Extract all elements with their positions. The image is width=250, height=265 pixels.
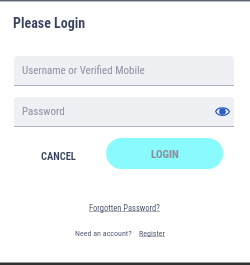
staticText: Password bbox=[22, 105, 65, 118]
button[interactable]: Username or Verified Mobile bbox=[14, 56, 234, 86]
button[interactable]: Register bbox=[139, 229, 165, 238]
staticText: Need an account? bbox=[75, 229, 132, 238]
button[interactable]: CANCEL bbox=[32, 146, 84, 166]
button[interactable]: LOGIN bbox=[106, 138, 223, 169]
staticText: LOGIN bbox=[151, 148, 179, 161]
button[interactable]: Password bbox=[14, 97, 234, 127]
button[interactable]: Forgotten Password? bbox=[89, 203, 160, 213]
staticText: Register bbox=[139, 229, 165, 238]
button[interactable]: Show password bbox=[214, 103, 230, 119]
staticText: Please Login bbox=[13, 15, 86, 31]
staticText: Forgotten Password? bbox=[89, 203, 160, 213]
staticText: Username or Verified Mobile bbox=[22, 64, 145, 77]
staticText: CANCEL bbox=[41, 150, 76, 162]
